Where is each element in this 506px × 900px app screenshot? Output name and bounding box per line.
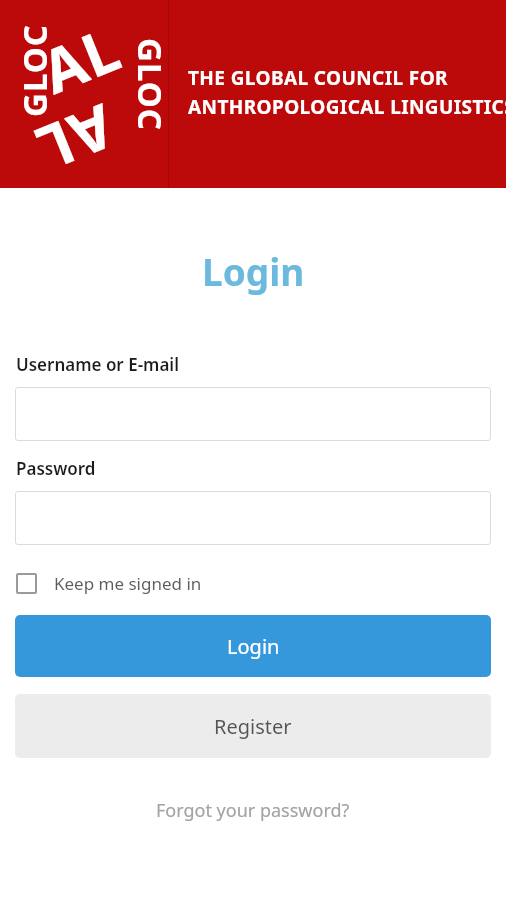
button[interactable]: Keep me signed in bbox=[16, 570, 210, 597]
staticText: AL bbox=[23, 86, 126, 192]
staticText: Register bbox=[214, 713, 292, 740]
button[interactable] bbox=[15, 387, 491, 441]
button[interactable]: Register bbox=[15, 694, 491, 758]
staticText: AL bbox=[29, 6, 132, 112]
button[interactable]: Login bbox=[15, 615, 491, 677]
staticText: Password bbox=[16, 457, 96, 480]
staticText: Username or E-mail bbox=[16, 353, 179, 376]
staticText: GLOC bbox=[128, 38, 173, 131]
staticText: THE GLOBAL COUNCIL FOR bbox=[188, 65, 448, 91]
staticText: Forgot your password? bbox=[156, 798, 350, 823]
staticText: Keep me signed in bbox=[54, 572, 202, 595]
button[interactable] bbox=[15, 491, 491, 545]
button[interactable]: Forgot your password? bbox=[144, 794, 362, 827]
staticText: Login bbox=[202, 246, 305, 296]
staticText: Login bbox=[227, 633, 280, 660]
staticText: ANTHROPOLOGICAL LINGUISTICS bbox=[188, 94, 506, 120]
staticText: GLOC bbox=[12, 24, 57, 117]
